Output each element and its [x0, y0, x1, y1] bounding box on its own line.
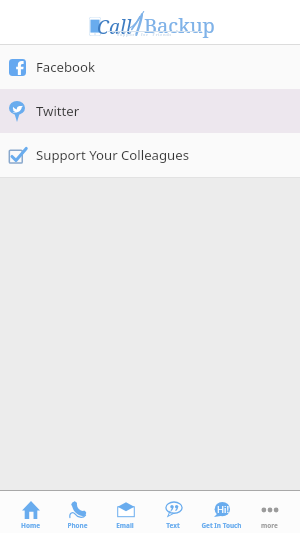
button[interactable]: more	[245, 491, 293, 533]
staticText: more	[261, 521, 278, 530]
staticText: Get In Touch	[201, 521, 242, 530]
staticText: Facebook	[36, 58, 96, 76]
staticText: Text	[166, 521, 180, 530]
staticText: Twitter	[36, 102, 80, 120]
button[interactable]: Twitter	[0, 89, 300, 133]
button[interactable]: Text	[149, 491, 197, 533]
staticText: Hi!	[217, 503, 230, 516]
button[interactable]: Facebook	[0, 45, 300, 89]
staticText: Email	[116, 521, 134, 530]
button[interactable]: Support Your Colleagues	[0, 133, 300, 177]
staticText: Home	[21, 521, 40, 530]
staticText: Call	[97, 14, 132, 40]
staticText: Support Your Colleagues	[36, 146, 189, 164]
button[interactable]: Phone	[54, 491, 101, 533]
staticText: S u p p o r t f o r F r i e n d s	[117, 32, 172, 37]
button[interactable]: Home	[7, 491, 54, 533]
button[interactable]: Hi!	[197, 491, 245, 533]
button[interactable]: Email	[101, 491, 149, 533]
staticText: Phone	[67, 521, 88, 530]
staticText: Backup	[144, 12, 215, 39]
